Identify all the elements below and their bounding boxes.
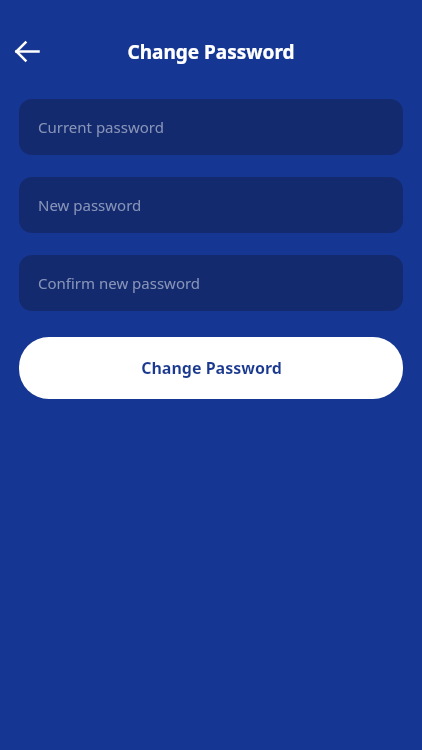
staticText: Change Password (141, 357, 282, 379)
staticText: New password (38, 195, 142, 215)
button[interactable]: Back (11, 35, 43, 67)
staticText: Confirm new password (38, 273, 201, 293)
staticText: Change Password (0, 39, 422, 65)
button[interactable]: Change Password (19, 337, 403, 399)
button[interactable]: Confirm new password (19, 255, 403, 311)
button[interactable]: New password (19, 177, 403, 233)
staticText: Current password (38, 117, 164, 137)
button[interactable]: Current password (19, 99, 403, 155)
